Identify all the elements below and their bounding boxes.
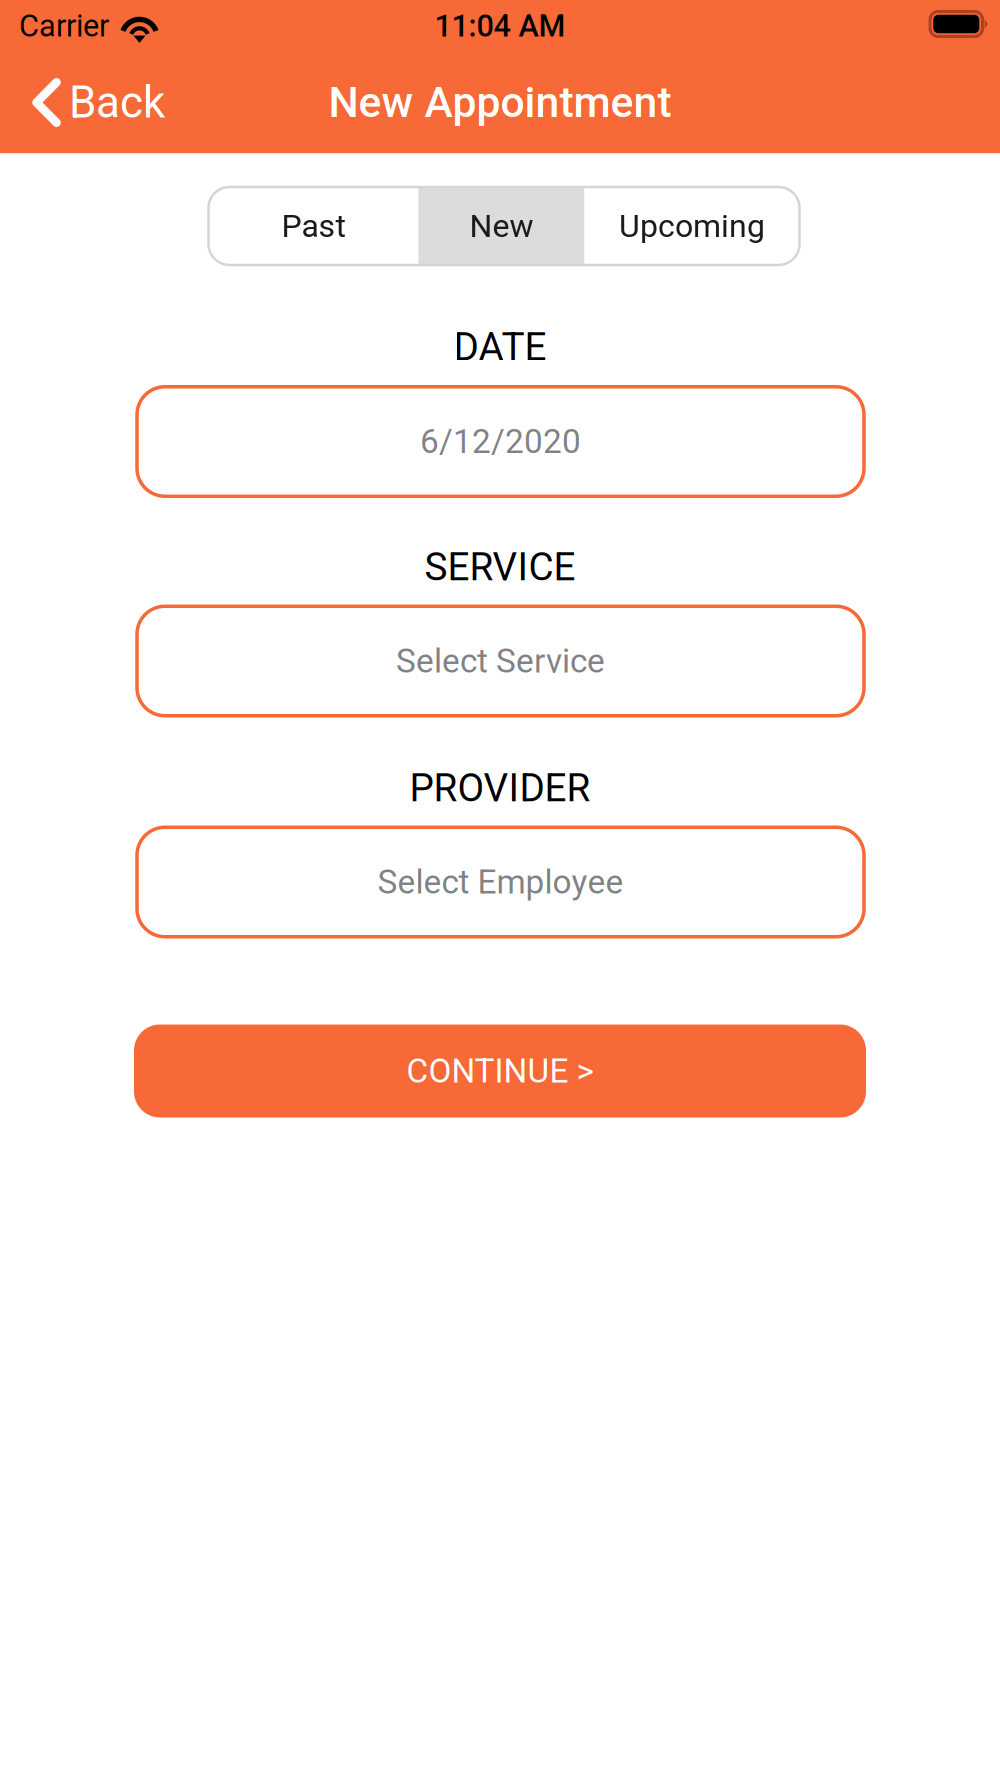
- staticText: PROVIDER: [409, 765, 590, 811]
- button[interactable]: Upcoming: [584, 187, 799, 265]
- staticText: Carrier: [19, 8, 109, 44]
- staticText: New: [469, 207, 533, 245]
- button[interactable]: Select Service: [137, 606, 864, 716]
- staticText: 11:04 AM: [434, 8, 565, 44]
- button[interactable]: Back: [0, 63, 189, 142]
- staticText: Select Service: [396, 641, 605, 681]
- staticText: Past: [281, 207, 345, 245]
- button[interactable]: Past: [208, 187, 418, 265]
- staticText: DATE: [453, 324, 546, 370]
- staticText: New Appointment: [328, 77, 671, 127]
- button[interactable]: 6/12/2020: [137, 387, 864, 496]
- button[interactable]: CONTINUE >: [134, 1024, 866, 1117]
- staticText: CONTINUE >: [406, 1051, 593, 1091]
- staticText: Back: [69, 77, 165, 128]
- button[interactable]: New: [418, 187, 584, 265]
- staticText: 6/12/2020: [420, 422, 581, 461]
- staticText: Select Employee: [377, 862, 623, 902]
- staticText: SERVICE: [424, 544, 575, 590]
- staticText: Upcoming: [619, 207, 765, 245]
- button[interactable]: Select Employee: [137, 827, 864, 937]
